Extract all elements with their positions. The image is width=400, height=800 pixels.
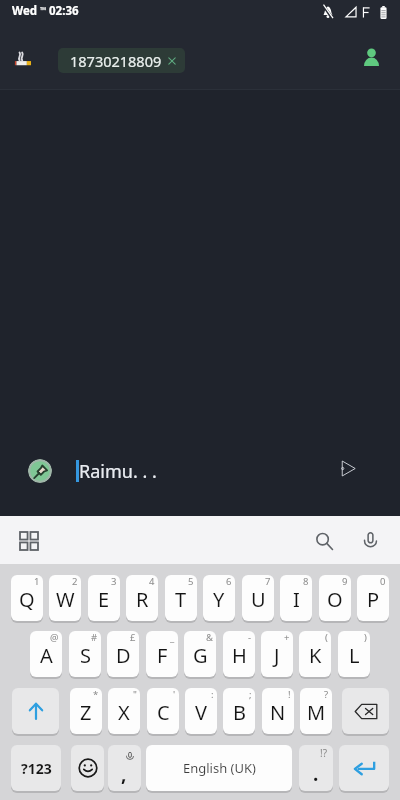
staticText: 0 xyxy=(380,575,386,588)
staticText: G xyxy=(193,642,208,669)
button[interactable]: ! xyxy=(262,688,294,734)
staticText: - xyxy=(248,631,252,644)
staticText: @ xyxy=(50,631,59,644)
button[interactable]: Search xyxy=(309,526,339,556)
button[interactable]: 0 xyxy=(357,575,389,621)
staticText: English (UK) xyxy=(183,759,256,777)
staticText: ) xyxy=(364,631,367,644)
staticText: ! xyxy=(288,688,291,701)
button[interactable]: Apps xyxy=(14,526,44,556)
staticText: ?123 xyxy=(21,759,52,778)
button[interactable]: ( xyxy=(299,631,331,677)
button[interactable]: : xyxy=(185,688,217,734)
staticText: D xyxy=(116,642,131,669)
button[interactable]: - xyxy=(223,631,255,677)
button[interactable]: 18730218809 xyxy=(58,48,185,73)
button[interactable]: Key xyxy=(71,745,104,791)
staticText: 9 xyxy=(342,575,348,588)
button[interactable]: ? xyxy=(300,688,332,734)
staticText: L xyxy=(349,642,360,669)
button[interactable]: Voice input xyxy=(355,526,385,556)
staticText: ; xyxy=(249,688,252,701)
staticText: Q xyxy=(19,586,35,613)
staticText: 5 xyxy=(188,575,194,588)
staticText: !? xyxy=(320,746,328,760)
staticText: £ xyxy=(130,631,136,644)
staticText: ™ xyxy=(40,4,47,15)
button[interactable]: Key xyxy=(12,688,59,734)
button[interactable]: Key xyxy=(339,745,389,791)
staticText: O xyxy=(327,586,343,613)
button[interactable]: # xyxy=(69,631,101,677)
staticText: U xyxy=(251,586,266,613)
staticText: I xyxy=(293,586,300,613)
staticText: Z xyxy=(80,699,92,726)
staticText: 3 xyxy=(111,575,117,588)
button[interactable]: 7 xyxy=(242,575,274,621)
staticText: ? xyxy=(324,688,329,701)
staticText: S xyxy=(80,642,91,669)
staticText: Y xyxy=(213,586,225,613)
staticText: Wed xyxy=(12,3,38,19)
button[interactable]: Send xyxy=(334,454,362,482)
staticText: 02:36 xyxy=(49,3,79,19)
button[interactable]: ; xyxy=(223,688,255,734)
staticText: : xyxy=(211,688,214,701)
button[interactable]: 3 xyxy=(88,575,120,621)
staticText: # xyxy=(91,631,98,644)
button[interactable]: * xyxy=(70,688,102,734)
staticText: _ xyxy=(170,631,175,644)
staticText: E xyxy=(98,586,110,613)
staticText: 18730218809 xyxy=(70,51,162,71)
button[interactable]: " xyxy=(108,688,140,734)
staticText: , xyxy=(121,761,127,787)
staticText: V xyxy=(195,699,207,726)
button[interactable]: 9 xyxy=(319,575,351,621)
staticText: X xyxy=(118,699,130,726)
staticText: F xyxy=(157,642,168,669)
button[interactable]: Key xyxy=(108,745,141,791)
button[interactable]: _ xyxy=(146,631,178,677)
staticText: 6 xyxy=(226,575,232,588)
staticText: 1 xyxy=(34,575,40,588)
staticText: " xyxy=(133,688,137,701)
staticText: 8 xyxy=(303,575,309,588)
button[interactable]: Key xyxy=(342,688,389,734)
button[interactable]: & xyxy=(184,631,216,677)
button[interactable]: Attach xyxy=(28,459,52,483)
staticText: * xyxy=(93,688,99,701)
button[interactable]: £ xyxy=(107,631,139,677)
button[interactable]: Key xyxy=(299,745,333,791)
staticText: N xyxy=(270,699,286,726)
staticText: & xyxy=(206,631,213,644)
button[interactable]: App icon xyxy=(11,46,37,72)
button[interactable]: 5 xyxy=(165,575,197,621)
button[interactable]: Key xyxy=(11,745,61,791)
button[interactable]: Contacts xyxy=(357,43,385,71)
staticText: B xyxy=(233,699,246,726)
button[interactable]: 6 xyxy=(203,575,235,621)
button[interactable]: + xyxy=(261,631,293,677)
staticText: P xyxy=(367,586,380,613)
staticText: T xyxy=(175,586,187,613)
staticText: A xyxy=(40,642,53,669)
staticText: ' xyxy=(173,688,176,701)
button[interactable]: English (UK) xyxy=(146,745,292,791)
staticText: 7 xyxy=(265,575,271,588)
staticText: . xyxy=(313,761,319,787)
button[interactable]: 4 xyxy=(126,575,158,621)
staticText: + xyxy=(284,631,290,644)
staticText: R xyxy=(136,586,149,613)
staticText: W xyxy=(56,586,75,613)
button[interactable]: @ xyxy=(30,631,62,677)
button[interactable]: 8 xyxy=(280,575,312,621)
button[interactable]: ' xyxy=(147,688,179,734)
staticText: J xyxy=(274,642,280,669)
button[interactable]: ) xyxy=(338,631,370,677)
button[interactable]: 1 xyxy=(11,575,43,621)
staticText: K xyxy=(309,642,322,669)
staticText: ( xyxy=(325,631,328,644)
staticText: 2 xyxy=(72,575,78,588)
staticText: M xyxy=(307,699,326,726)
button[interactable]: 2 xyxy=(49,575,81,621)
